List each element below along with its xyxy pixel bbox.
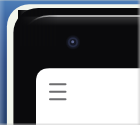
button[interactable]: Open navigation menu <box>0 0 140 125</box>
